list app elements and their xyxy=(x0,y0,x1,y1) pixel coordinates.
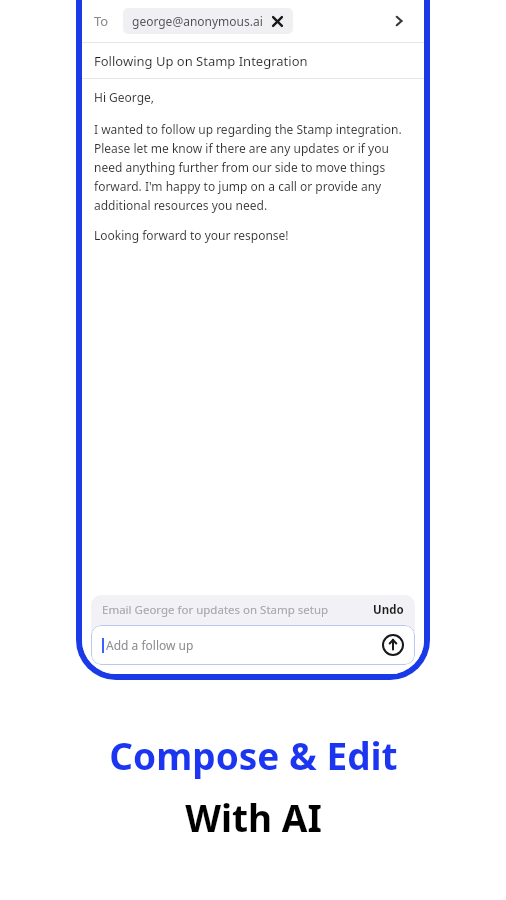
staticText: To xyxy=(94,12,109,30)
button[interactable]: Add a follow up xyxy=(91,625,415,665)
button[interactable]: Send xyxy=(382,634,404,656)
button[interactable]: george@anonymous.ai xyxy=(123,8,293,34)
staticText: I wanted to follow up regarding the Stam… xyxy=(94,121,412,213)
button[interactable]: Expand recipients xyxy=(386,8,412,34)
staticText: Email George for updates on Stamp setup xyxy=(102,602,329,618)
other: Remove recipient xyxy=(271,15,284,28)
staticText: george@anonymous.ai xyxy=(132,13,263,29)
staticText: Hi George, xyxy=(94,89,155,105)
staticText: Add a follow up xyxy=(106,637,194,653)
button[interactable]: Following Up on Stamp Integration xyxy=(82,43,424,78)
staticText: Undo xyxy=(373,602,404,618)
staticText: Compose & Edit xyxy=(109,730,398,780)
staticText: Following Up on Stamp Integration xyxy=(94,52,308,70)
button[interactable]: To xyxy=(82,0,424,42)
staticText: Looking forward to your response! xyxy=(94,227,289,243)
staticText: With AI xyxy=(185,792,322,842)
button[interactable]: Email George for updates on Stamp setup xyxy=(91,595,415,625)
